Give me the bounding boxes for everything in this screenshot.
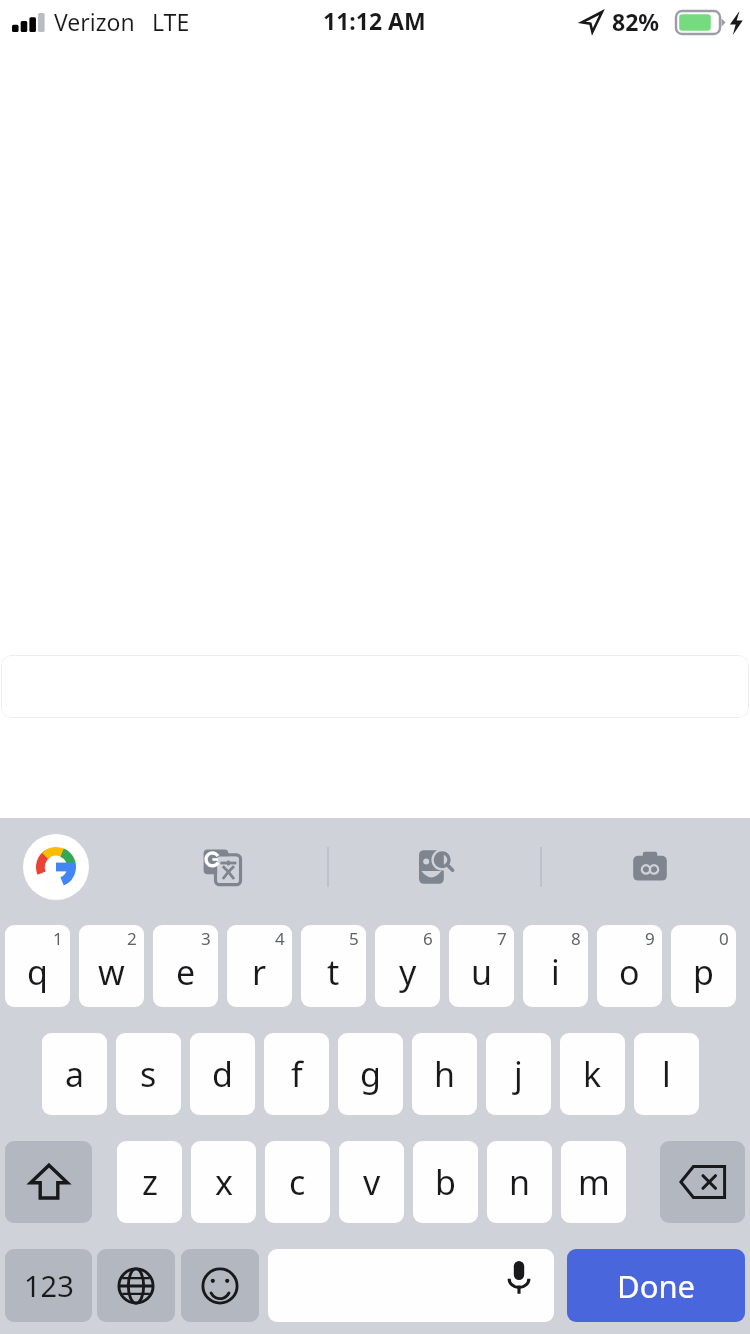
button[interactable]: 6 <box>375 925 440 1007</box>
staticText: 0 <box>719 927 729 950</box>
staticText: 2 <box>127 927 137 950</box>
button[interactable]: 7 <box>449 925 514 1007</box>
staticText: k <box>583 1051 602 1097</box>
button[interactable]: Search stickers <box>405 837 465 897</box>
staticText: 9 <box>645 927 655 950</box>
staticText: t <box>327 949 340 995</box>
button[interactable] <box>1 655 749 718</box>
button[interactable]: g <box>338 1033 403 1115</box>
button[interactable]: Space <box>268 1249 554 1322</box>
staticText: q <box>27 949 48 995</box>
staticText: h <box>434 1051 456 1097</box>
staticText: p <box>693 949 714 995</box>
staticText: 7 <box>497 927 507 950</box>
staticText: f <box>291 1051 303 1097</box>
staticText: d <box>212 1051 233 1097</box>
staticText: c <box>289 1159 306 1205</box>
staticText: x <box>215 1159 233 1205</box>
staticText: m <box>578 1159 610 1205</box>
button[interactable]: 5 <box>301 925 366 1007</box>
button[interactable]: Google <box>23 834 89 900</box>
staticText: o <box>619 949 640 995</box>
button[interactable]: s <box>116 1033 181 1115</box>
button[interactable]: f <box>264 1033 329 1115</box>
button[interactable]: 9 <box>597 925 662 1007</box>
button[interactable]: c <box>265 1141 330 1223</box>
staticText: 8 <box>571 927 581 950</box>
staticText: a <box>65 1051 85 1097</box>
button[interactable]: a <box>42 1033 107 1115</box>
button[interactable]: 0 <box>671 925 736 1007</box>
staticText: y <box>399 949 417 995</box>
button[interactable]: Translate <box>192 837 252 897</box>
button[interactable]: 1 <box>5 925 70 1007</box>
staticText: v <box>363 1159 381 1205</box>
button[interactable]: h <box>412 1033 477 1115</box>
button[interactable]: 3 <box>153 925 218 1007</box>
button[interactable]: Emoji <box>181 1249 259 1322</box>
button[interactable]: Shift <box>5 1141 92 1223</box>
staticText: s <box>140 1051 157 1097</box>
staticText: 6 <box>423 927 433 950</box>
staticText: i <box>551 949 560 995</box>
button[interactable]: l <box>634 1033 699 1115</box>
staticText: e <box>176 949 196 995</box>
button[interactable]: 4 <box>227 925 292 1007</box>
staticText: w <box>98 949 125 995</box>
staticText: l <box>662 1051 671 1097</box>
staticText: r <box>252 949 267 995</box>
staticText: 5 <box>349 927 359 950</box>
staticText: j <box>514 1051 523 1097</box>
button[interactable]: j <box>486 1033 551 1115</box>
button[interactable]: Google Lens <box>620 837 680 897</box>
staticText: z <box>142 1159 158 1205</box>
button[interactable]: k <box>560 1033 625 1115</box>
button[interactable]: Done <box>567 1249 745 1322</box>
button[interactable]: m <box>561 1141 626 1223</box>
staticText: u <box>471 949 493 995</box>
staticText: 82% <box>612 6 660 37</box>
button[interactable]: Backspace <box>660 1141 745 1223</box>
staticText: g <box>360 1051 381 1097</box>
staticText: b <box>435 1159 456 1205</box>
button[interactable]: d <box>190 1033 255 1115</box>
button[interactable]: 123 <box>5 1249 92 1322</box>
staticText: 1 <box>53 927 63 950</box>
button[interactable]: v <box>339 1141 404 1223</box>
staticText: n <box>509 1159 531 1205</box>
staticText: 4 <box>275 927 285 950</box>
staticText: Done <box>617 1265 696 1307</box>
staticText: 3 <box>201 927 211 950</box>
button[interactable]: b <box>413 1141 478 1223</box>
button[interactable]: Change language <box>97 1249 175 1322</box>
button[interactable]: n <box>487 1141 552 1223</box>
button[interactable]: 2 <box>79 925 144 1007</box>
button[interactable]: 8 <box>523 925 588 1007</box>
staticText: Verizon <box>54 6 135 37</box>
button[interactable]: x <box>191 1141 256 1223</box>
staticText: 123 <box>24 1266 74 1305</box>
staticText: LTE <box>152 6 190 37</box>
button[interactable]: z <box>117 1141 182 1223</box>
staticText: 11:12 AM <box>323 5 426 36</box>
